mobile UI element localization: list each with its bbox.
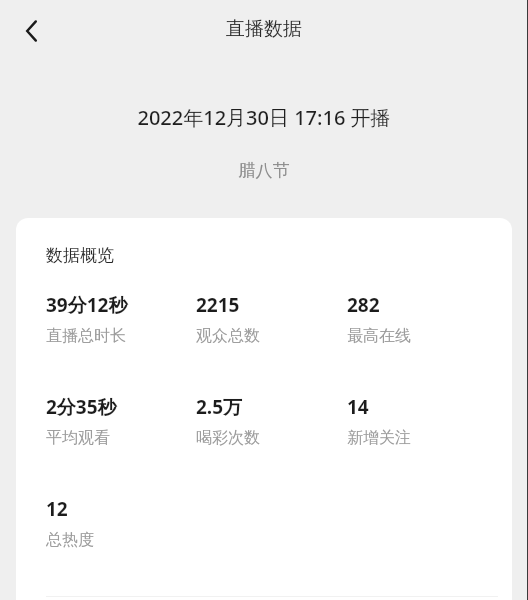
staticText: 数据概览: [46, 245, 114, 266]
staticText: 2分35秒: [46, 394, 117, 420]
staticText: 14: [347, 394, 369, 420]
staticText: 最高在线: [347, 326, 411, 346]
staticText: 直播数据: [226, 17, 302, 41]
staticText: 腊八节: [0, 160, 528, 181]
staticText: 2.5万: [196, 394, 243, 420]
staticText: 平均观看: [46, 428, 110, 448]
button[interactable]: Back: [8, 7, 56, 55]
staticText: 12: [46, 496, 68, 522]
staticText: 喝彩次数: [196, 428, 260, 448]
staticText: 新增关注: [347, 428, 411, 448]
staticText: 39分12秒: [46, 292, 128, 318]
staticText: 2215: [196, 292, 240, 318]
staticText: 282: [347, 292, 380, 318]
staticText: 直播总时长: [46, 326, 126, 346]
staticText: 总热度: [46, 530, 94, 550]
staticText: 2022年12月30日 17:16 开播: [0, 104, 528, 131]
staticText: 观众总数: [196, 326, 260, 346]
